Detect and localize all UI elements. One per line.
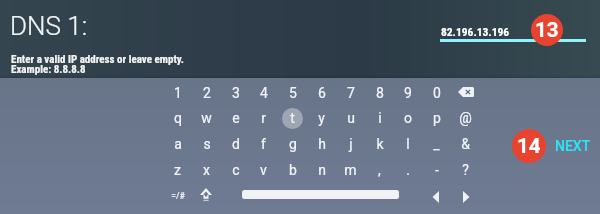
- button[interactable]: m: [336, 157, 365, 183]
- staticText: ?: [462, 162, 469, 178]
- button[interactable]: f: [249, 131, 278, 157]
- button[interactable]: 9: [393, 80, 422, 106]
- button[interactable]: b: [278, 157, 307, 183]
- staticText: 3: [232, 85, 240, 101]
- staticText: 7: [347, 85, 355, 101]
- button[interactable]: n: [307, 157, 336, 183]
- button[interactable]: t: [278, 105, 307, 131]
- staticText: m: [344, 162, 357, 178]
- staticText: =/#: [171, 191, 185, 201]
- staticText: k: [376, 136, 384, 152]
- button[interactable]: @: [451, 105, 480, 131]
- staticText: b: [289, 162, 297, 178]
- staticText: i: [378, 110, 382, 126]
- staticText: v: [260, 162, 267, 178]
- button[interactable]: w: [192, 105, 221, 131]
- staticText: 6: [318, 85, 326, 101]
- button[interactable]: g: [278, 131, 307, 157]
- button[interactable]: 7: [336, 80, 365, 106]
- button[interactable]: u: [336, 105, 365, 131]
- staticText: 14: [517, 134, 541, 158]
- staticText: y: [318, 110, 325, 126]
- staticText: 1: [174, 85, 182, 101]
- staticText: o: [404, 110, 412, 126]
- staticText: ,: [378, 162, 381, 178]
- staticText: a: [174, 136, 182, 152]
- staticText: w: [201, 110, 212, 126]
- button[interactable]: q: [163, 105, 192, 131]
- button[interactable]: Move right: [461, 191, 471, 203]
- staticText: -: [435, 162, 439, 178]
- button[interactable]: l: [393, 131, 422, 157]
- button[interactable]: d: [221, 131, 250, 157]
- staticText: z: [174, 162, 181, 178]
- staticText: t: [290, 110, 295, 126]
- button[interactable]: 5: [278, 80, 307, 106]
- button[interactable]: i: [365, 105, 394, 131]
- button[interactable]: Backspace: [458, 87, 474, 97]
- staticText: u: [347, 110, 355, 126]
- staticText: _: [433, 136, 440, 152]
- button[interactable]: 0: [422, 80, 451, 106]
- button[interactable]: e: [221, 105, 250, 131]
- staticText: @: [459, 110, 472, 126]
- staticText: &: [461, 136, 470, 152]
- staticText: 9: [404, 85, 412, 101]
- button[interactable]: 2: [192, 80, 221, 106]
- button[interactable]: &: [451, 131, 480, 157]
- staticText: DNS 1:: [10, 11, 88, 41]
- button[interactable]: ?: [451, 157, 480, 183]
- staticText: d: [232, 136, 240, 152]
- staticText: NEXT: [555, 138, 591, 154]
- staticText: x: [203, 162, 210, 178]
- button[interactable]: y: [307, 105, 336, 131]
- button[interactable]: p: [422, 105, 451, 131]
- button[interactable]: Shift: [200, 188, 212, 201]
- button[interactable]: c: [221, 157, 250, 183]
- staticText: q: [174, 110, 182, 126]
- button[interactable]: NEXT: [549, 132, 595, 158]
- button[interactable]: r: [249, 105, 278, 131]
- staticText: e: [232, 110, 240, 126]
- staticText: l: [406, 136, 410, 152]
- button[interactable]: 82.196.13.196: [440, 18, 586, 43]
- button[interactable]: v: [249, 157, 278, 183]
- staticText: r: [261, 110, 266, 126]
- button[interactable]: =/#: [163, 183, 192, 209]
- button[interactable]: k: [365, 131, 394, 157]
- button[interactable]: ,: [365, 157, 394, 183]
- staticText: 2: [203, 85, 211, 101]
- button[interactable]: 3: [221, 80, 250, 106]
- staticText: n: [318, 162, 326, 178]
- staticText: s: [203, 136, 211, 152]
- button[interactable]: 8: [365, 80, 394, 106]
- staticText: g: [289, 136, 297, 152]
- staticText: c: [232, 162, 240, 178]
- button[interactable]: 6: [307, 80, 336, 106]
- staticText: Enter a valid IP address or leave empty.…: [11, 53, 184, 76]
- button[interactable]: -: [422, 157, 451, 183]
- button[interactable]: Space: [242, 190, 399, 199]
- staticText: 13: [535, 18, 559, 42]
- button[interactable]: s: [192, 131, 221, 157]
- button[interactable]: a: [163, 131, 192, 157]
- staticText: p: [433, 110, 441, 126]
- button[interactable]: 1: [163, 80, 192, 106]
- staticText: f: [261, 136, 266, 152]
- button[interactable]: _: [422, 131, 451, 157]
- button[interactable]: Move left: [431, 191, 441, 203]
- button[interactable]: h: [307, 131, 336, 157]
- staticText: 82.196.13.196: [441, 25, 510, 38]
- button[interactable]: 4: [249, 80, 278, 106]
- button[interactable]: j: [336, 131, 365, 157]
- staticText: 8: [376, 85, 384, 101]
- staticText: 0: [433, 85, 441, 101]
- button[interactable]: x: [192, 157, 221, 183]
- staticText: 4: [260, 85, 268, 101]
- staticText: .: [406, 162, 410, 178]
- button[interactable]: o: [393, 105, 422, 131]
- staticText: j: [349, 136, 353, 152]
- staticText: 5: [289, 85, 297, 101]
- button[interactable]: z: [163, 157, 192, 183]
- button[interactable]: .: [393, 157, 422, 183]
